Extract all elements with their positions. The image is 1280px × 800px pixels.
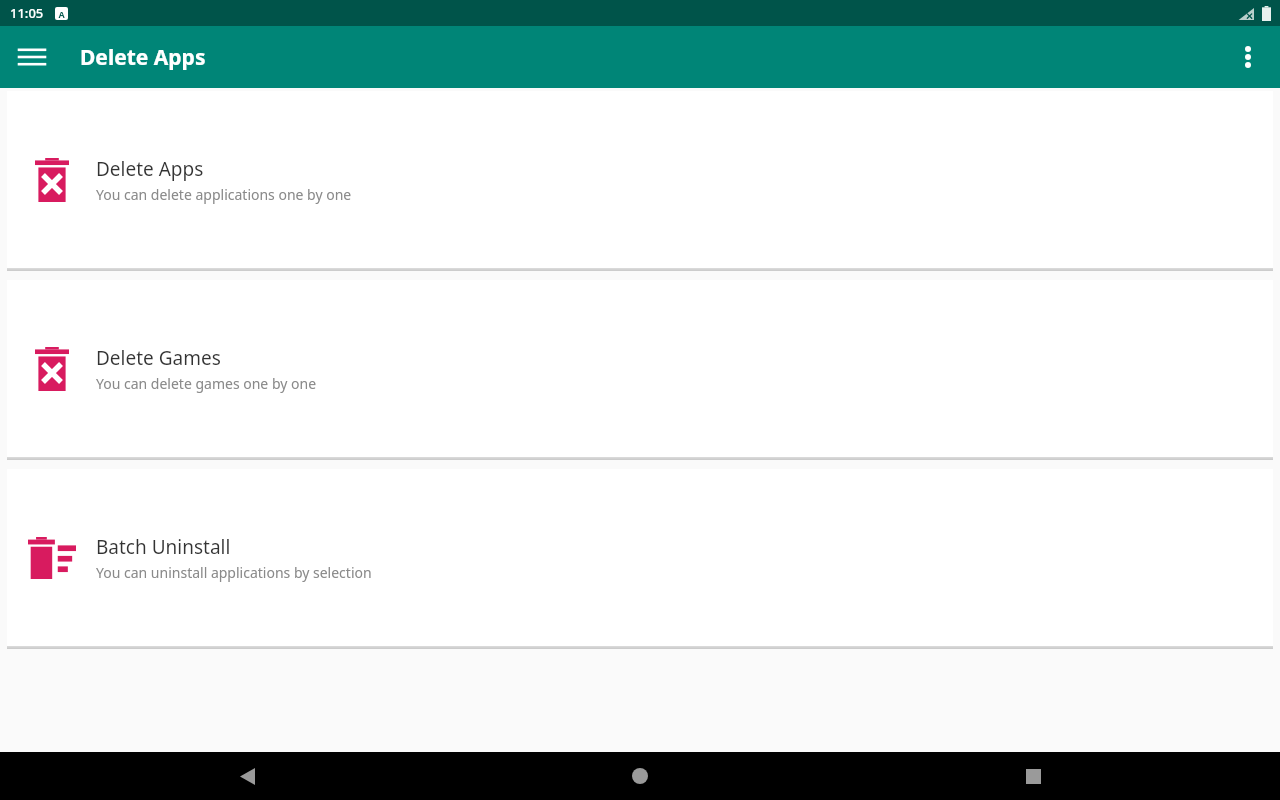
button[interactable]: Delete Apps bbox=[7, 91, 1273, 268]
button[interactable]: Recent apps bbox=[1009, 752, 1057, 800]
button[interactable]: Batch Uninstall bbox=[7, 469, 1273, 646]
staticText: Batch Uninstall bbox=[96, 534, 231, 560]
staticText: You can delete applications one by one bbox=[96, 185, 352, 204]
button[interactable]: Back bbox=[223, 752, 271, 800]
staticText: You can uninstall applications by select… bbox=[96, 563, 372, 582]
staticText: Delete Games bbox=[96, 345, 221, 371]
staticText: Delete Apps bbox=[96, 156, 204, 182]
button[interactable]: Home bbox=[616, 752, 664, 800]
staticText: You can delete games one by one bbox=[96, 374, 317, 393]
button[interactable]: More options bbox=[1224, 33, 1272, 81]
button[interactable]: Delete Games bbox=[7, 280, 1273, 457]
staticText: 11:05 bbox=[10, 4, 44, 22]
staticText: A bbox=[58, 8, 65, 20]
staticText: Delete Apps bbox=[80, 43, 206, 72]
button[interactable]: Open navigation menu bbox=[8, 33, 56, 81]
